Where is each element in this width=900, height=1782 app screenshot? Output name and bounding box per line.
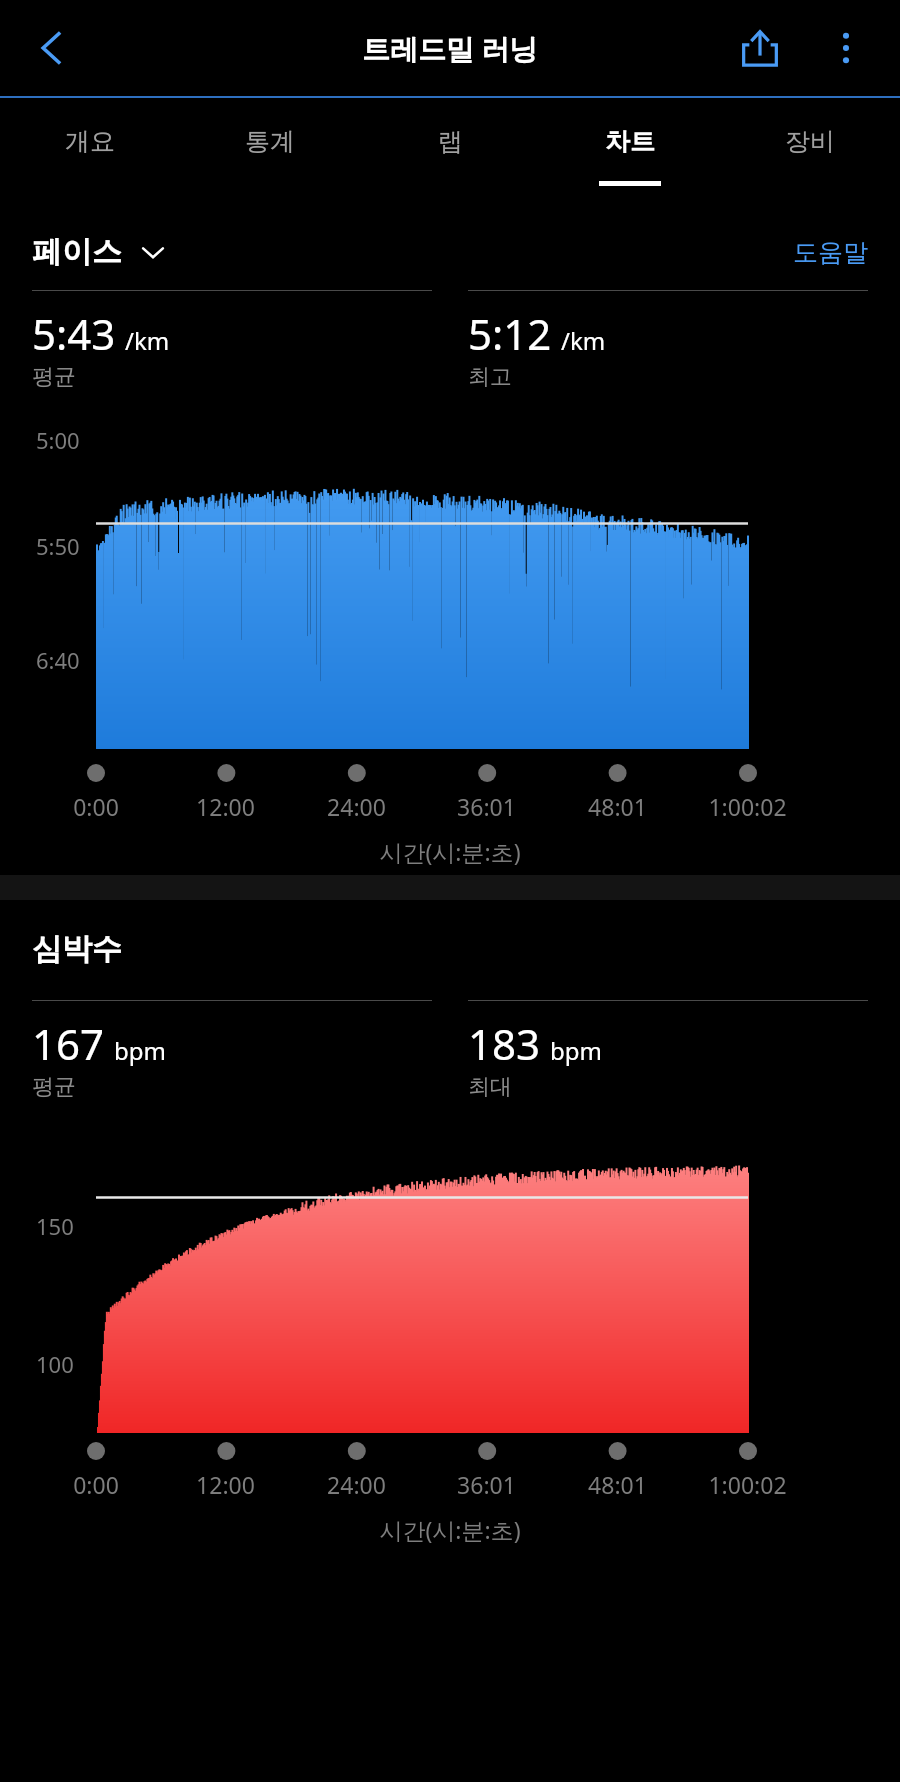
staticText: 36:01	[457, 1469, 516, 1500]
staticText: 167	[32, 1015, 105, 1072]
button[interactable]: 개요	[0, 98, 180, 214]
staticText: 5:00	[36, 425, 80, 455]
staticText: 150	[36, 1211, 74, 1241]
staticText: 12:00	[196, 1469, 255, 1500]
button[interactable]: More options	[812, 14, 880, 82]
button[interactable]: 통계	[180, 98, 360, 214]
staticText: 트레드밀 러닝	[362, 29, 538, 67]
button[interactable]: 장비	[720, 98, 900, 214]
button[interactable]: 도움말	[793, 237, 868, 268]
staticText: 랩	[438, 126, 463, 157]
staticText: 통계	[245, 126, 295, 157]
staticText: /km	[125, 324, 170, 357]
staticText: 48:01	[588, 1469, 647, 1500]
staticText: 시간(시:분:초)	[0, 836, 900, 867]
button[interactable]: 차트	[540, 98, 720, 214]
staticText: 최대	[468, 1073, 512, 1101]
staticText: 평균	[32, 1073, 76, 1101]
staticText: 장비	[785, 126, 835, 157]
staticText: 시간(시:분:초)	[0, 1514, 900, 1545]
staticText: 5:12	[468, 305, 552, 362]
staticText: 183	[468, 1015, 541, 1072]
staticText: 24:00	[327, 791, 386, 822]
staticText: 24:00	[327, 1469, 386, 1500]
staticText: 최고	[468, 363, 512, 391]
button[interactable]: 랩	[360, 98, 540, 214]
button[interactable]: 페이스	[32, 233, 166, 271]
staticText: 100	[36, 1349, 74, 1379]
staticText: 0:00	[73, 1469, 119, 1500]
staticText: 12:00	[196, 791, 255, 822]
staticText: 평균	[32, 363, 76, 391]
staticText: 5:43	[32, 305, 116, 362]
staticText: 5:50	[36, 531, 80, 561]
staticText: 차트	[605, 126, 655, 157]
staticText: 심박수	[32, 930, 122, 968]
staticText: /km	[561, 324, 606, 357]
staticText: 6:40	[36, 645, 80, 675]
staticText: 도움말	[793, 237, 868, 268]
staticText: 개요	[65, 126, 115, 157]
staticText: 36:01	[457, 791, 516, 822]
button[interactable]: Share	[726, 14, 794, 82]
staticText: bpm	[114, 1034, 166, 1067]
staticText: bpm	[550, 1034, 602, 1067]
staticText: 1:00:02	[708, 791, 787, 822]
staticText: 48:01	[588, 791, 647, 822]
staticText: 1:00:02	[708, 1469, 787, 1500]
staticText: 0:00	[73, 791, 119, 822]
staticText: 페이스	[32, 233, 122, 271]
button[interactable]: Back	[18, 14, 86, 82]
